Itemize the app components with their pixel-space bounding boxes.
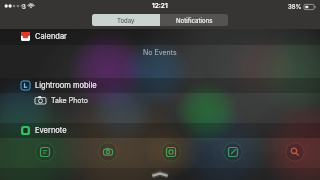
staticText: Notifications xyxy=(176,17,213,24)
button[interactable]: New note xyxy=(35,142,55,162)
staticText: 3 xyxy=(22,3,26,10)
button[interactable]: Camera xyxy=(98,142,118,162)
button[interactable]: Lightroom mobile xyxy=(0,78,320,93)
button[interactable]: Audio note xyxy=(161,142,181,162)
staticText: Calendar xyxy=(35,32,67,41)
staticText: 12:21 xyxy=(152,2,168,10)
button[interactable]: Notifications xyxy=(160,14,228,26)
staticText: Take Photo xyxy=(51,96,88,104)
staticText: Evernote xyxy=(35,126,67,135)
button[interactable]: Search xyxy=(285,142,305,162)
button[interactable]: Take Photo xyxy=(0,93,320,107)
button[interactable]: Today xyxy=(92,14,160,26)
button[interactable]: Reminder xyxy=(223,142,243,162)
staticText: 38% xyxy=(288,3,302,10)
staticText: No Events xyxy=(143,48,177,56)
button[interactable]: Calendar xyxy=(0,29,320,44)
staticText: Lightroom mobile xyxy=(35,81,97,90)
staticText: Today xyxy=(117,17,135,24)
button[interactable]: Evernote xyxy=(0,123,320,138)
